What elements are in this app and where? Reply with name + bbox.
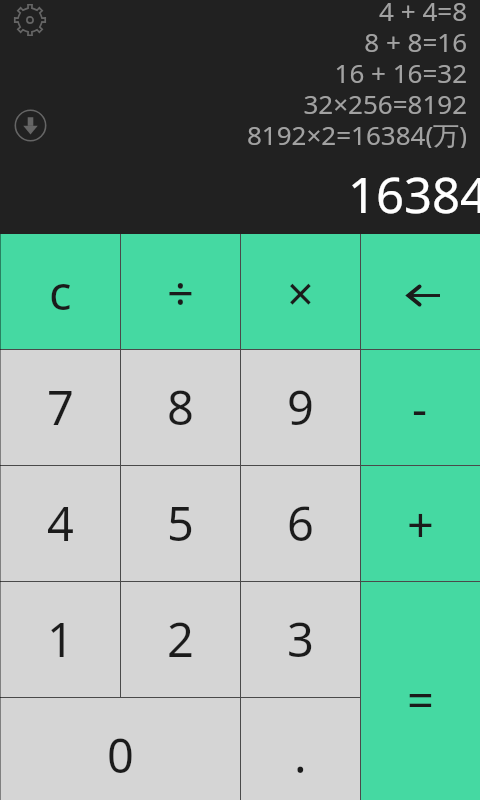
button[interactable]: 0: [0, 697, 240, 800]
staticText: ×: [287, 261, 314, 325]
staticText: 16 + 16=32: [334, 55, 467, 86]
staticText: 8 + 8=16: [364, 24, 467, 55]
staticText: 6: [287, 491, 314, 555]
staticText: .: [294, 723, 307, 787]
button[interactable]: .: [240, 697, 360, 800]
staticText: 9: [287, 375, 314, 439]
button[interactable]: c: [0, 234, 120, 349]
staticText: 4: [47, 491, 74, 555]
staticText: 4 + 4=8: [379, 0, 467, 24]
staticText: 2: [167, 607, 194, 671]
staticText: c: [49, 260, 72, 324]
button[interactable]: Backspace: [360, 234, 480, 349]
staticText: 3: [287, 607, 314, 671]
button[interactable]: 3: [240, 581, 360, 697]
button[interactable]: 2: [120, 581, 240, 697]
button[interactable]: -: [360, 349, 480, 465]
staticText: 0: [107, 723, 134, 787]
button[interactable]: 9: [240, 349, 360, 465]
staticText: =: [407, 667, 434, 731]
button[interactable]: ÷: [120, 234, 240, 349]
staticText: 7: [47, 375, 74, 439]
button[interactable]: Settings: [14, 4, 46, 36]
staticText: 1: [47, 607, 74, 671]
button[interactable]: 6: [240, 465, 360, 581]
staticText: ÷: [167, 261, 194, 325]
button[interactable]: 5: [120, 465, 240, 581]
staticText: 8192×2=16384(万): [246, 117, 467, 148]
staticText: 8: [167, 375, 194, 439]
staticText: 16384: [348, 161, 480, 228]
button[interactable]: Show history: [14, 109, 47, 142]
button[interactable]: 4: [0, 465, 120, 581]
button[interactable]: =: [360, 581, 480, 800]
staticText: -: [412, 376, 428, 440]
button[interactable]: 8: [120, 349, 240, 465]
button[interactable]: ×: [240, 234, 360, 349]
button[interactable]: +: [360, 465, 480, 581]
staticText: +: [407, 492, 434, 556]
staticText: 32×256=8192: [303, 86, 467, 117]
staticText: 5: [167, 491, 194, 555]
button[interactable]: 1: [0, 581, 120, 697]
button[interactable]: 7: [0, 349, 120, 465]
